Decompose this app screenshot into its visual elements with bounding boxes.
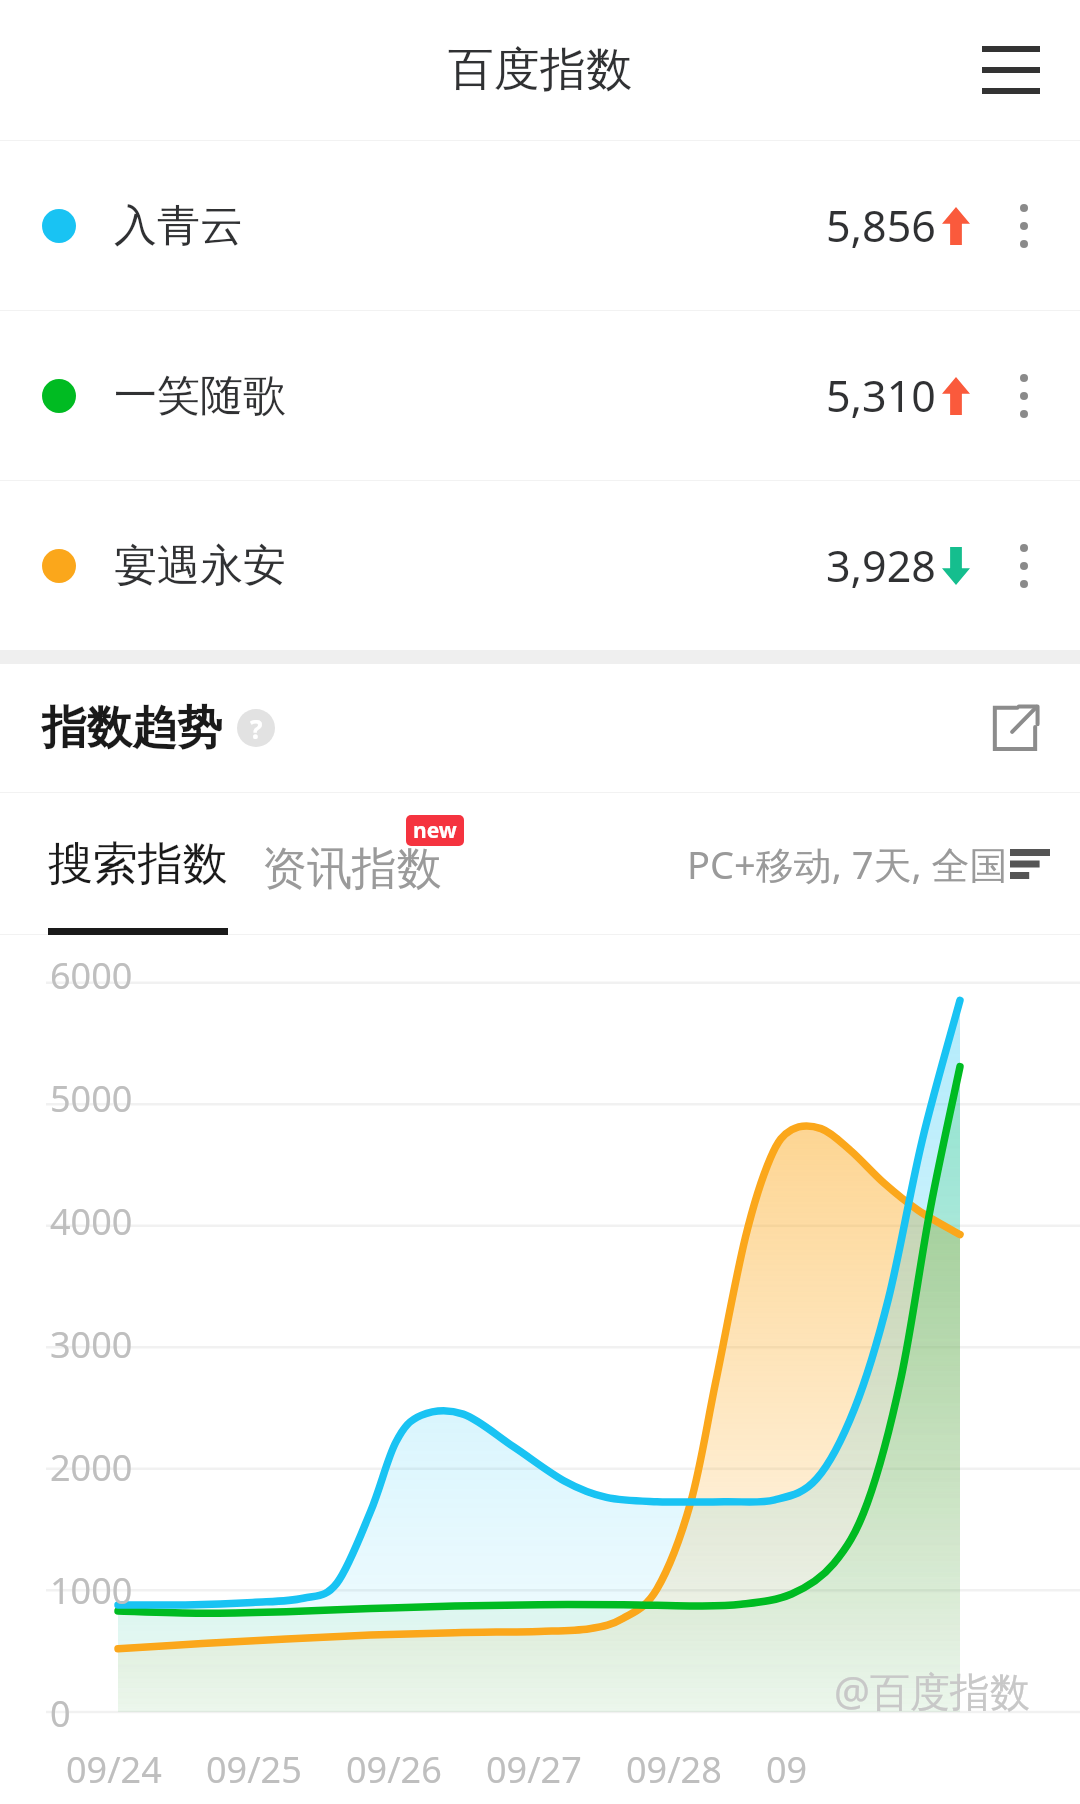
- staticText: 入青云: [114, 199, 243, 253]
- staticText: 资讯指数: [262, 841, 442, 898]
- staticText: PC+移动, 7天, 全国: [687, 838, 1008, 890]
- button[interactable]: Menu: [968, 27, 1054, 113]
- button[interactable]: More options: [994, 366, 1054, 426]
- button[interactable]: More options: [994, 196, 1054, 256]
- staticText: new: [413, 816, 457, 845]
- button[interactable]: More options: [994, 536, 1054, 596]
- staticText: 指数趋势: [42, 700, 222, 757]
- staticText: 3000: [50, 1320, 133, 1369]
- staticText: 0: [50, 1689, 71, 1738]
- staticText: 2000: [50, 1443, 133, 1492]
- staticText: @百度指数: [834, 1663, 1030, 1718]
- staticText: 4000: [50, 1197, 133, 1246]
- staticText: ?: [250, 711, 263, 746]
- staticText: 09/27: [486, 1745, 582, 1794]
- staticText: 一笑随歌: [114, 369, 286, 423]
- button[interactable]: 宴遇永安: [0, 481, 1080, 650]
- button[interactable]: PC+移动, 7天, 全国: [687, 838, 1050, 890]
- staticText: 搜索指数: [48, 836, 228, 893]
- button[interactable]: 入青云: [0, 141, 1080, 310]
- button[interactable]: 资讯指数: [262, 831, 442, 898]
- staticText: 09/28: [626, 1745, 722, 1794]
- staticText: 3,928: [826, 536, 936, 595]
- staticText: 宴遇永安: [114, 539, 286, 593]
- staticText: 6000: [50, 951, 133, 1000]
- staticText: 1000: [50, 1566, 133, 1615]
- button[interactable]: Help: [236, 708, 276, 748]
- staticText: 5,310: [826, 366, 936, 425]
- staticText: 09/26: [346, 1745, 442, 1794]
- staticText: 百度指数: [448, 41, 632, 99]
- staticText: 5,856: [826, 196, 936, 255]
- staticText: 09/24: [66, 1745, 162, 1794]
- button[interactable]: 一笑随歌: [0, 311, 1080, 480]
- staticText: 5000: [50, 1074, 133, 1123]
- button[interactable]: Open full chart: [980, 693, 1050, 763]
- staticText: 09: [766, 1745, 808, 1794]
- staticText: 09/25: [206, 1745, 302, 1794]
- button[interactable]: 搜索指数: [48, 836, 228, 893]
